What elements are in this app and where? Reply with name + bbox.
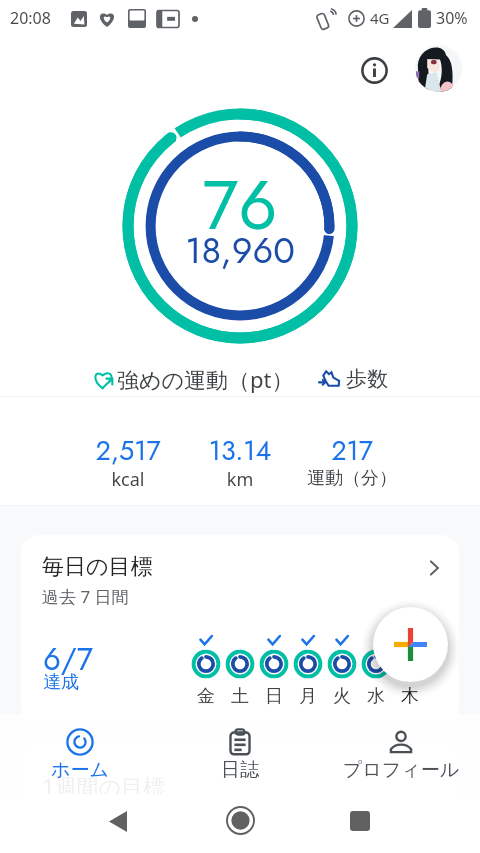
button[interactable]: 強めの運動（pt） <box>93 364 294 394</box>
staticText: 日誌 <box>176 758 304 782</box>
staticText: ホーム <box>16 758 144 782</box>
button[interactable]: Profile <box>415 45 462 92</box>
button[interactable]: Home <box>217 797 263 843</box>
staticText: 木 <box>395 685 425 708</box>
button[interactable]: 歩数 <box>318 366 388 392</box>
staticText: 30% <box>436 7 468 29</box>
staticText: 1週間の目標 <box>42 771 166 801</box>
button[interactable]: 2,517 <box>72 423 184 503</box>
staticText: 月 <box>293 685 323 708</box>
staticText: km <box>184 467 296 492</box>
button[interactable]: プロフィール <box>337 722 465 786</box>
staticText: 13.14 <box>184 431 296 470</box>
button[interactable]: 13.14 <box>184 423 296 503</box>
staticText: 歩数 <box>346 366 388 392</box>
staticText: 土 <box>225 685 255 708</box>
button[interactable]: Info <box>352 48 396 92</box>
staticText: 達成 <box>43 671 79 694</box>
staticText: 強めの運動（pt） <box>117 364 294 394</box>
button[interactable]: ホーム <box>16 722 144 786</box>
staticText: 運動（分） <box>296 467 408 490</box>
staticText: 6/7 <box>43 637 94 682</box>
staticText: 217 <box>296 431 408 470</box>
button[interactable]: 日誌 <box>176 722 304 786</box>
button[interactable]: Open <box>417 551 451 585</box>
staticText: 毎日の目標 <box>42 553 153 581</box>
button[interactable]: 毎日の目標 <box>21 535 459 725</box>
staticText: 2,517 <box>72 431 184 470</box>
button[interactable]: 217 <box>296 423 408 503</box>
button[interactable]: Add <box>373 607 448 682</box>
staticText: kcal <box>72 467 184 492</box>
button[interactable]: Back <box>95 798 141 844</box>
staticText: 4G <box>370 8 390 28</box>
staticText: 20:08 <box>10 7 51 29</box>
staticText: 日 <box>259 685 289 708</box>
staticText: 過去 7 日間 <box>42 585 129 608</box>
staticText: 18,960 <box>0 224 480 276</box>
staticText: 76 <box>0 156 480 254</box>
staticText: 金 <box>191 685 221 708</box>
staticText: 水 <box>361 685 391 708</box>
staticText: 火 <box>327 685 357 708</box>
button[interactable]: Recents <box>337 798 383 844</box>
staticText: プロフィール <box>337 758 465 782</box>
